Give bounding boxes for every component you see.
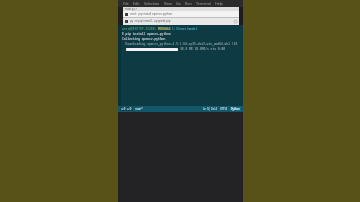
staticText: Selection: [144, 1, 160, 6]
staticText: C:/Users/model: [172, 27, 198, 31]
staticText: Terminal: [196, 1, 211, 6]
staticText: View: [164, 1, 172, 6]
other: Terminal icon: [125, 13, 128, 16]
staticText: Ln 12, Col 4: [203, 107, 218, 111]
staticText: $ pip install opencv-python: [122, 32, 171, 36]
other: Terminal icon: [125, 20, 128, 23]
button[interactable]: Notifications: [230, 107, 241, 111]
button[interactable]: Selection: [142, 1, 162, 6]
staticText: 38.8 MB 10.6MB/s eta 0:00: [180, 47, 226, 51]
staticText: Edit: [133, 1, 140, 6]
staticText: main*: [135, 107, 143, 111]
staticText: Collecting opencv-python: [122, 37, 166, 41]
button[interactable]: Go: [174, 1, 183, 6]
staticText: Downloading opencv_python-4.9.1.64-cp35-…: [122, 42, 238, 46]
staticText: Run: [185, 1, 192, 6]
staticText: UTF-8: [220, 107, 228, 111]
button[interactable]: Run: [183, 1, 194, 6]
staticText: MINGW64: [158, 27, 171, 31]
button[interactable]: Terminal: [194, 1, 213, 6]
staticText: Python: [231, 107, 240, 111]
button[interactable]: Terminal icon: [123, 18, 239, 24]
staticText: cmd : pip install opencv-python: [130, 12, 173, 16]
button[interactable]: Help: [213, 1, 225, 6]
staticText: main.py ×: [125, 7, 137, 11]
staticText: Go: [176, 1, 181, 6]
button[interactable]: File: [121, 1, 131, 6]
button[interactable]: View: [162, 1, 174, 6]
staticText: File: [123, 1, 129, 6]
button[interactable]: Remote: [120, 107, 133, 111]
button[interactable]: Terminal icon: [123, 11, 239, 17]
staticText: Help: [215, 1, 223, 6]
staticText: ✕ 0 ⚠ 0: [121, 107, 132, 111]
staticText: user@DESKTOP-9X2K8L: [122, 27, 157, 31]
staticText: py -m pip install --upgrade pip: [130, 19, 171, 23]
button[interactable]: Edit: [131, 1, 142, 6]
